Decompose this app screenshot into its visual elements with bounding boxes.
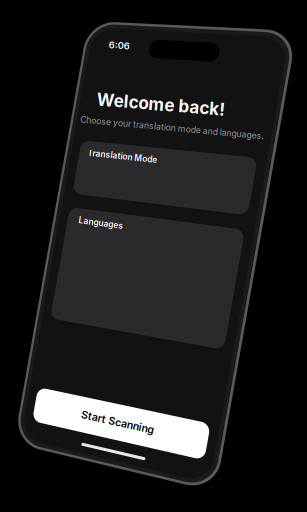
staticText: Choose your translation mode and languag… (80, 123, 264, 133)
staticText: Start Scanning (80, 416, 155, 429)
staticText: Languages (79, 218, 124, 228)
staticText: 6:06 (109, 40, 130, 51)
staticText: Welcome back! (96, 94, 225, 115)
staticText: Translation Mode (87, 151, 157, 161)
